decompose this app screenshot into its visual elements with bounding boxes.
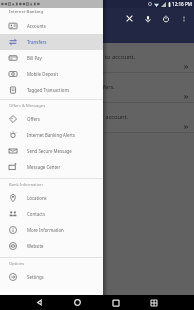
button[interactable]: Send Secure Message (0, 143, 103, 159)
button[interactable]: Back (20, 295, 58, 310)
staticText: Contacts (27, 211, 45, 217)
button[interactable]: One time transfer from an account to acc… (0, 43, 194, 73)
staticText: Website (27, 243, 44, 249)
button[interactable]: Recents (96, 295, 135, 310)
staticText: Settings (27, 274, 44, 280)
staticText: Send Secure Message (27, 148, 72, 154)
button[interactable]: Transfer funds to another member account… (0, 103, 194, 133)
button[interactable]: Close (121, 10, 138, 27)
staticText: Accounts (27, 23, 46, 29)
staticText: 12:16 PM (172, 1, 192, 7)
staticText: Tagged Transactions (27, 87, 70, 93)
button[interactable]: More options (176, 11, 191, 26)
button[interactable]: Contacts (0, 206, 103, 222)
staticText: One time transfer from an account to acc… (9, 53, 136, 61)
button[interactable]: Internet Banking Alerts (0, 127, 103, 143)
button[interactable]: More Information (0, 222, 103, 238)
button[interactable]: Log out (157, 10, 174, 27)
staticText: View or delete the scheduled transfers. (9, 83, 115, 91)
staticText: Bill Pay (27, 55, 42, 61)
button[interactable]: Website (0, 238, 103, 254)
staticText: Locations (27, 195, 47, 201)
staticText: Transfer funds to another member account… (9, 113, 129, 121)
button[interactable]: Message Center (0, 159, 103, 175)
button[interactable]: Accounts (0, 18, 103, 34)
staticText: Mobile Deposit (27, 71, 59, 77)
button[interactable]: Mobile Deposit (0, 66, 103, 82)
staticText: Offers & Messages (9, 103, 46, 109)
button[interactable]: Settings (0, 269, 103, 285)
staticText: Internet Banking (9, 8, 44, 14)
button[interactable]: Bill Pay (0, 50, 103, 66)
staticText: Internet Banking Alerts (27, 132, 75, 138)
staticText: Transfer Funds (10, 29, 59, 39)
button[interactable]: Home (58, 295, 96, 310)
button[interactable]: Locations (0, 190, 103, 206)
staticText: Bank Information (9, 182, 43, 188)
button[interactable]: Transfers (0, 34, 103, 50)
staticText: Offers (27, 116, 40, 122)
staticText: More Information (27, 227, 64, 233)
staticText: Message Center (27, 164, 61, 170)
button[interactable]: View or delete the scheduled transfers. (0, 73, 194, 103)
button[interactable]: Voice search (139, 10, 156, 27)
button[interactable]: Split screen (135, 295, 173, 310)
staticText: Options (9, 261, 25, 267)
button[interactable]: Offers (0, 111, 103, 127)
button[interactable]: Tagged Transactions (0, 82, 103, 98)
staticText: Transfers (27, 39, 47, 45)
